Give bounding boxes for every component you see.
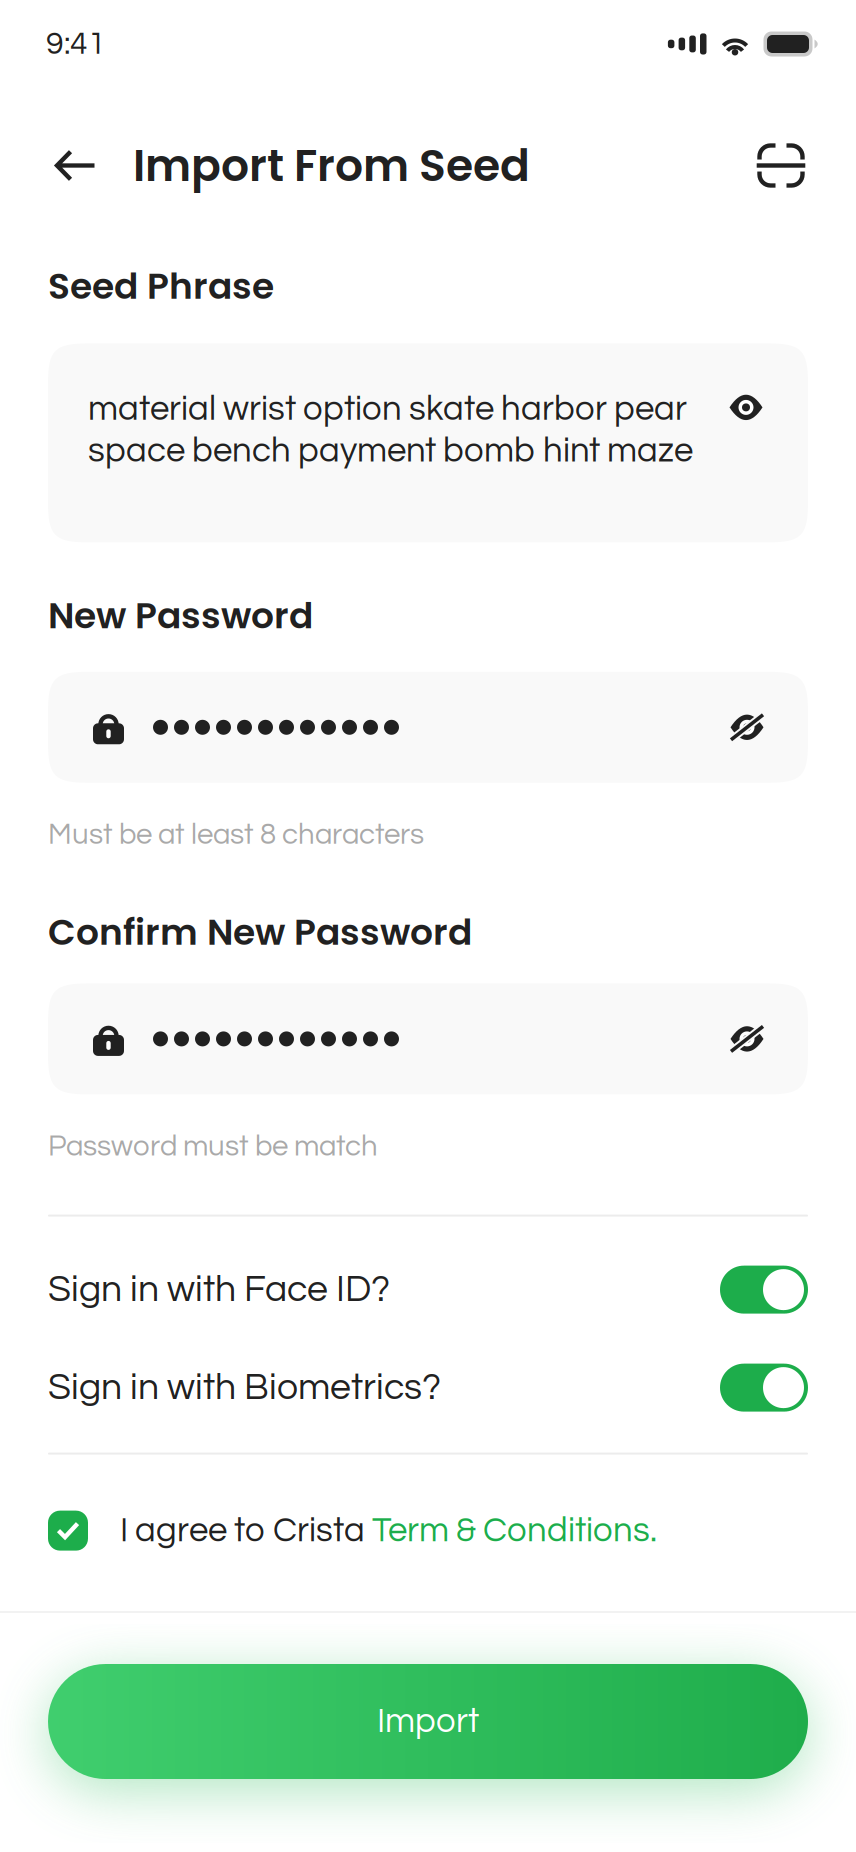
staticText: Password must be match [48, 1131, 378, 1162]
staticText: Import [377, 1704, 479, 1739]
staticText: Import From Seed [133, 135, 530, 196]
button[interactable]: Import [48, 1664, 808, 1779]
button[interactable]: Scan QR code [750, 134, 812, 196]
staticText: material wrist option skate harbor pear … [88, 391, 693, 469]
staticText: Sign in with Face ID? [48, 1270, 390, 1309]
button[interactable]: Show seed phrase [719, 391, 773, 423]
button[interactable]: Back [44, 134, 106, 196]
staticText: Confirm New Password [48, 907, 472, 957]
staticText: New Password [48, 590, 313, 641]
staticText: Seed Phrase [48, 261, 274, 311]
button[interactable]: Show password [727, 707, 767, 747]
staticText: 9:41 [46, 27, 106, 60]
staticText: I agree to Crista [120, 1513, 372, 1548]
staticText: Term & Conditions. [372, 1513, 657, 1548]
button[interactable]: Agree to terms [48, 1511, 88, 1551]
staticText: Must be at least 8 characters [48, 820, 424, 850]
button[interactable]: Sign in with Biometrics? [48, 1364, 808, 1412]
staticText: Sign in with Biometrics? [48, 1368, 441, 1407]
button[interactable]: Show password [727, 1019, 767, 1059]
button[interactable]: Sign in with Face ID? [48, 1266, 808, 1314]
button[interactable]: Term & Conditions. [372, 1513, 657, 1548]
